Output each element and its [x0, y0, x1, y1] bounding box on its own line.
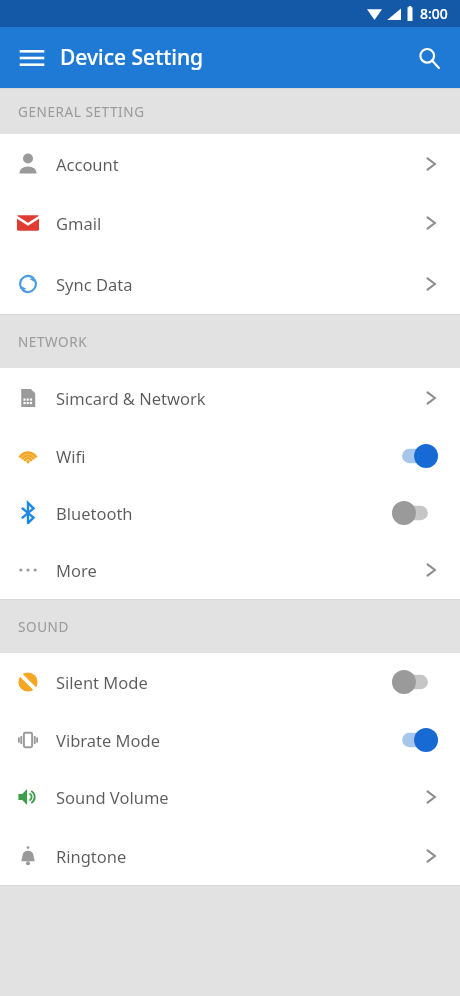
button[interactable]: Sync Data: [0, 253, 460, 314]
button[interactable]: Search: [407, 36, 451, 80]
button[interactable]: More: [0, 541, 460, 599]
staticText: Vibrate Mode: [56, 729, 392, 751]
button[interactable]: Silent Mode: [0, 653, 460, 711]
button[interactable]: Toggle off: [392, 669, 438, 695]
staticText: Account: [56, 153, 424, 175]
staticText: 8:00: [420, 4, 448, 23]
staticText: GENERAL SETTING: [18, 103, 145, 121]
button[interactable]: Toggle off: [392, 500, 438, 526]
staticText: More: [56, 559, 424, 581]
button[interactable]: Vibrate Mode: [0, 711, 460, 768]
button[interactable]: Account: [0, 134, 460, 193]
staticText: NETWORK: [18, 333, 88, 351]
button[interactable]: Toggle on: [392, 727, 438, 753]
button[interactable]: Ringtone: [0, 826, 460, 885]
button[interactable]: Sound Volume: [0, 768, 460, 826]
button[interactable]: Wifi: [0, 427, 460, 484]
staticText: Device Setting: [60, 43, 204, 72]
staticText: Bluetooth: [56, 502, 392, 524]
staticText: SOUND: [18, 618, 69, 636]
staticText: Wifi: [56, 445, 392, 467]
staticText: Sync Data: [56, 273, 424, 295]
staticText: Silent Mode: [56, 671, 392, 693]
button[interactable]: Gmail: [0, 193, 460, 253]
staticText: Simcard & Network: [56, 387, 424, 409]
button[interactable]: Toggle on: [392, 443, 438, 469]
staticText: Ringtone: [56, 845, 424, 867]
button[interactable]: Open navigation menu: [10, 36, 54, 80]
staticText: Sound Volume: [56, 786, 424, 808]
staticText: Gmail: [56, 212, 424, 234]
button[interactable]: Simcard & Network: [0, 368, 460, 427]
button[interactable]: Bluetooth: [0, 484, 460, 541]
